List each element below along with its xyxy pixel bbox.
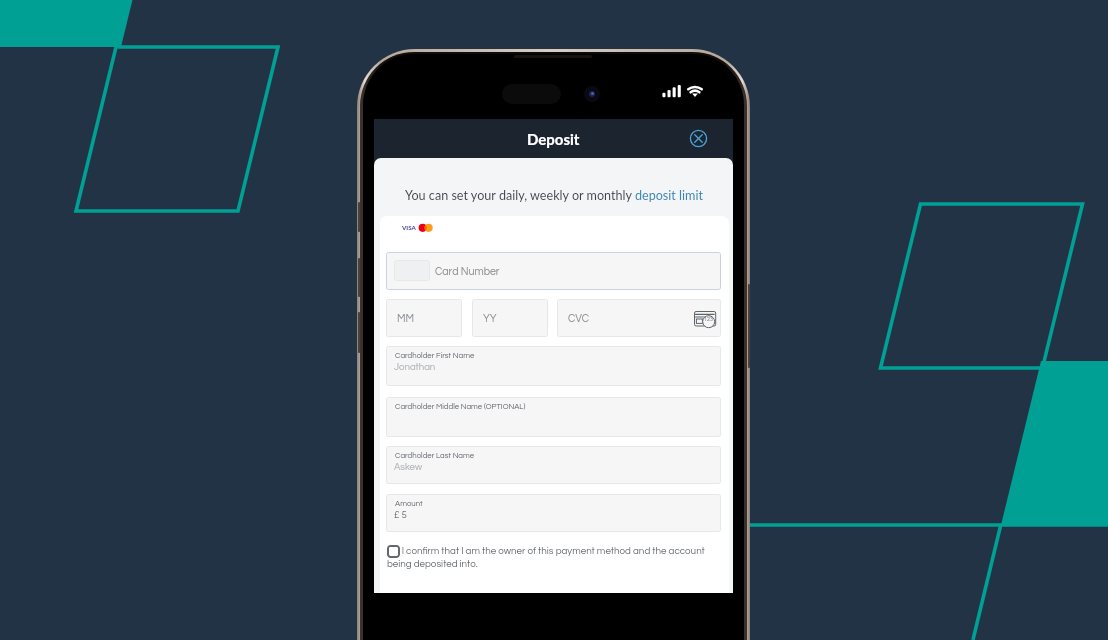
button[interactable]: YY bbox=[472, 299, 548, 337]
staticText: I confirm that I am the owner of this pa… bbox=[387, 546, 720, 569]
button[interactable]: CVC bbox=[557, 299, 721, 337]
staticText: Askew bbox=[394, 462, 423, 472]
staticText: Cardholder Middle Name (OPTIONAL) bbox=[395, 403, 526, 411]
staticText: Jonathan bbox=[394, 362, 436, 372]
staticText: CVC bbox=[568, 313, 590, 324]
button[interactable]: Cardholder Last Name bbox=[386, 446, 721, 484]
button[interactable]: Card Number bbox=[386, 252, 721, 290]
button[interactable]: Cardholder First Name bbox=[386, 346, 721, 386]
button[interactable]: I confirm that I am the owner of this pa… bbox=[387, 543, 720, 573]
staticText: Amount bbox=[395, 500, 423, 508]
staticText: £ 5 bbox=[394, 510, 407, 520]
staticText: YY bbox=[483, 313, 497, 324]
staticText: VISA bbox=[402, 224, 416, 231]
staticText: You can set your daily, weekly or monthl… bbox=[405, 188, 703, 203]
staticText: 123 bbox=[704, 317, 713, 323]
staticText: Cardholder First Name bbox=[395, 352, 475, 360]
button[interactable]: MM bbox=[386, 299, 462, 337]
button[interactable]: Amount bbox=[386, 494, 721, 532]
button[interactable]: Cardholder Middle Name (OPTIONAL) bbox=[386, 397, 721, 437]
staticText: Cardholder Last Name bbox=[395, 452, 475, 460]
button[interactable]: Close bbox=[689, 129, 708, 148]
staticText: Card Number bbox=[435, 266, 500, 277]
staticText: MM bbox=[397, 313, 415, 324]
staticText: Deposit bbox=[527, 130, 580, 148]
